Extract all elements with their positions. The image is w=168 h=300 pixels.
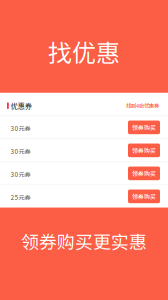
button[interactable]: 领券购买	[128, 189, 160, 203]
staticText: 30元券	[10, 147, 30, 156]
staticText: 优惠券	[11, 100, 32, 111]
button[interactable]: 领券购买	[128, 166, 160, 180]
staticText: 找到4张优惠券	[126, 102, 159, 110]
staticText: 30元券	[10, 170, 30, 179]
staticText: 领券购买	[132, 146, 156, 155]
staticText: 领券购买更实惠	[21, 228, 147, 254]
staticText: 25元券	[10, 193, 30, 202]
staticText: 领券购买	[132, 192, 156, 201]
button[interactable]: 领券购买	[128, 143, 160, 157]
staticText: 找优惠	[48, 34, 120, 69]
staticText: 领券购买	[132, 123, 156, 132]
button[interactable]: 领券购买	[128, 120, 160, 134]
staticText: 领券购买	[132, 169, 156, 178]
staticText: 30元券	[10, 124, 30, 133]
